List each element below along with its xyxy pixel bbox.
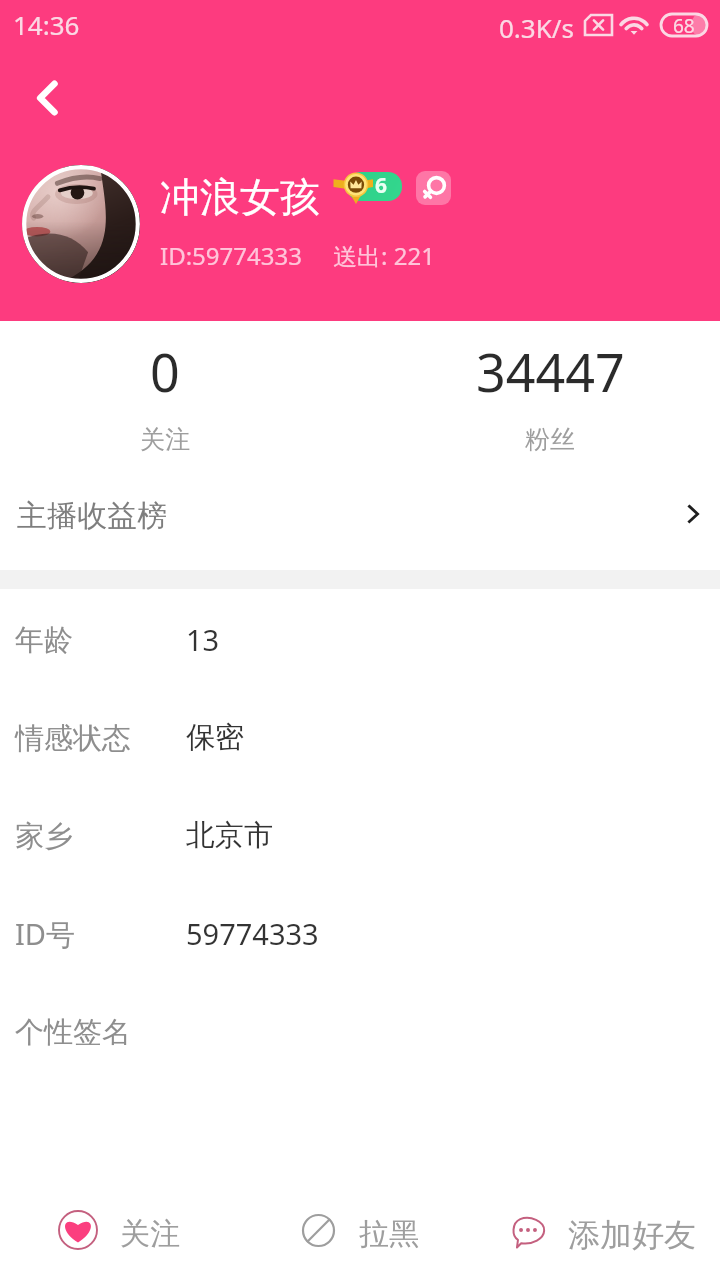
- staticText: 68: [673, 13, 695, 35]
- staticText: 保密: [186, 719, 244, 756]
- button[interactable]: 情感状态: [0, 689, 720, 787]
- staticText: 冲浪女孩: [160, 172, 320, 222]
- staticText: 6: [375, 172, 388, 200]
- button[interactable]: 添加好友: [450, 1184, 690, 1280]
- staticText: 13: [186, 620, 220, 659]
- button[interactable]: Level 6: [336, 166, 402, 212]
- button[interactable]: 年龄: [0, 591, 720, 689]
- staticText: 34447: [476, 336, 625, 407]
- staticText: 0.3K/s: [499, 10, 574, 45]
- staticText: 情感状态: [15, 720, 131, 757]
- staticText: 北京市: [186, 817, 273, 854]
- button[interactable]: Avatar: [22, 165, 140, 283]
- staticText: ID号: [15, 914, 76, 954]
- staticText: ID:59774333: [160, 239, 302, 272]
- staticText: 粉丝: [525, 424, 575, 455]
- staticText: 0: [150, 336, 180, 407]
- staticText: 14:36: [13, 7, 80, 42]
- button[interactable]: 个性签名: [0, 983, 720, 1081]
- staticText: 59774333: [186, 914, 319, 953]
- button[interactable]: 34447: [385, 321, 715, 470]
- button[interactable]: Back: [17, 68, 77, 128]
- staticText: 拉黑: [359, 1215, 419, 1253]
- staticText: 主播收益榜: [17, 497, 167, 535]
- button[interactable]: 关注: [0, 1184, 240, 1280]
- button[interactable]: 家乡: [0, 787, 720, 885]
- staticText: 添加好友: [568, 1215, 696, 1255]
- other: Female: [416, 171, 451, 205]
- staticText: 个性签名: [15, 1014, 131, 1051]
- button[interactable]: 0: [0, 321, 330, 470]
- staticText: 送出: 221: [333, 239, 435, 272]
- staticText: 关注: [140, 424, 190, 455]
- button[interactable]: 拉黑: [242, 1184, 482, 1280]
- staticText: 家乡: [15, 818, 73, 855]
- staticText: 年龄: [15, 622, 73, 659]
- button[interactable]: 主播收益榜: [0, 470, 720, 570]
- button[interactable]: ID号: [0, 885, 720, 983]
- staticText: 关注: [120, 1215, 180, 1253]
